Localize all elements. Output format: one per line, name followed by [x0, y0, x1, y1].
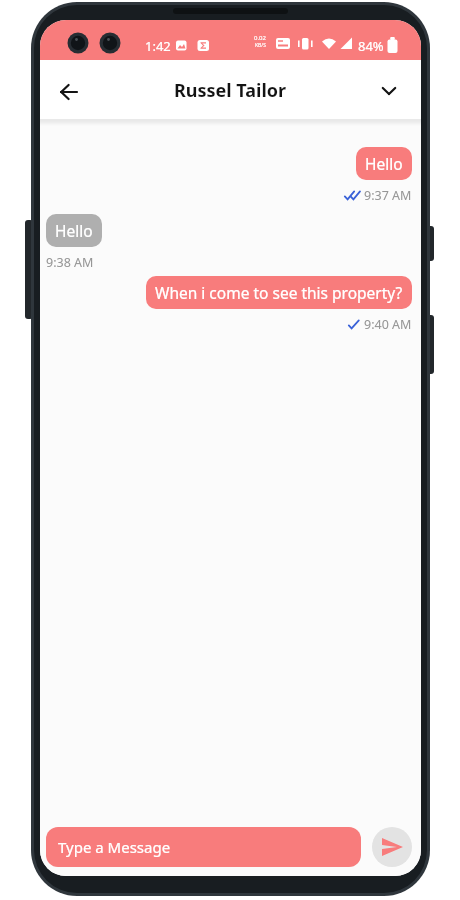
button[interactable]: Type a Message — [46, 827, 361, 867]
staticText: Type a Message — [58, 837, 171, 857]
staticText: 9:38 AM — [46, 254, 94, 271]
staticText: Hello — [55, 220, 93, 241]
staticText: 9:37 AM — [364, 187, 412, 204]
staticText: KB/S — [255, 42, 266, 49]
button[interactable]: When i come to see this property? — [146, 276, 412, 309]
staticText: 84% — [358, 37, 384, 55]
staticText: 1:42 — [145, 37, 171, 55]
staticText: Hello — [365, 153, 403, 174]
staticText: 0.02 — [254, 34, 266, 42]
staticText: 9:40 AM — [364, 316, 412, 333]
button[interactable]: Hello — [356, 147, 412, 180]
button[interactable] — [372, 827, 412, 867]
button[interactable] — [370, 72, 408, 110]
button[interactable]: Hello — [46, 214, 102, 247]
staticText: When i come to see this property? — [155, 282, 403, 303]
staticText: Russel Tailor — [174, 78, 287, 103]
button[interactable] — [49, 72, 89, 112]
